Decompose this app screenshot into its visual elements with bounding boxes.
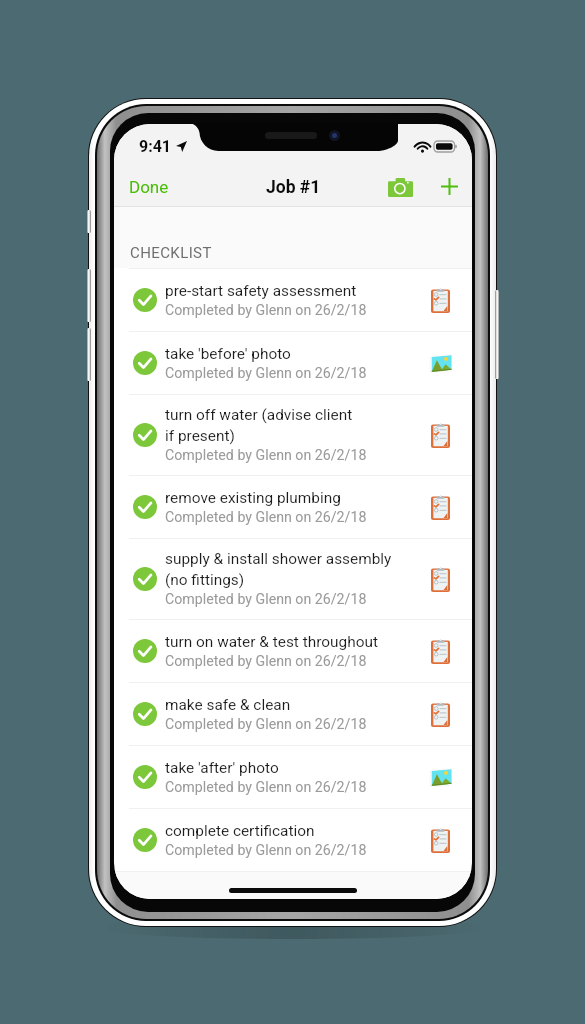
staticText: Completed by Glenn on 26/2/18 [165,302,367,319]
staticText: complete certification [165,822,315,840]
staticText: Completed by Glenn on 26/2/18 [165,716,367,733]
button[interactable]: Take photo [378,168,423,207]
button[interactable]: complete certification [114,809,472,871]
button[interactable]: take 'before' photo [114,332,472,394]
staticText: Job #1 [266,177,321,198]
button[interactable]: pre-start safety assessment [114,269,472,331]
staticText: make safe & clean [165,696,291,714]
staticText: pre-start safety assessment [165,282,357,300]
button[interactable]: supply & install shower assembly (no fit… [114,539,472,619]
staticText: remove existing plumbing [165,489,341,507]
staticText: supply & install shower assembly (no fit… [165,550,392,589]
staticText: CHECKLIST [130,244,212,262]
button[interactable]: Done [114,169,179,205]
staticText: Completed by Glenn on 26/2/18 [165,365,367,382]
staticText: turn on water & test throughout [165,633,378,651]
staticText: Completed by Glenn on 26/2/18 [165,653,367,670]
staticText: take 'before' photo [165,345,291,363]
staticText: 9:41 [139,137,172,156]
button[interactable]: make safe & clean [114,683,472,745]
staticText: turn off water (advise client if present… [165,406,353,445]
button[interactable]: turn on water & test throughout [114,620,472,682]
staticText: Completed by Glenn on 26/2/18 [165,779,367,796]
staticText: take 'after' photo [165,759,279,777]
button[interactable]: remove existing plumbing [114,476,472,538]
staticText: Completed by Glenn on 26/2/18 [165,447,367,464]
staticText: Done [129,177,169,197]
staticText: Completed by Glenn on 26/2/18 [165,509,367,526]
button[interactable]: take 'after' photo [114,746,472,808]
button[interactable]: turn off water (advise client if present… [114,395,472,475]
button[interactable]: Add item [431,168,468,205]
staticText: Completed by Glenn on 26/2/18 [165,842,367,859]
staticText: Completed by Glenn on 26/2/18 [165,591,367,608]
